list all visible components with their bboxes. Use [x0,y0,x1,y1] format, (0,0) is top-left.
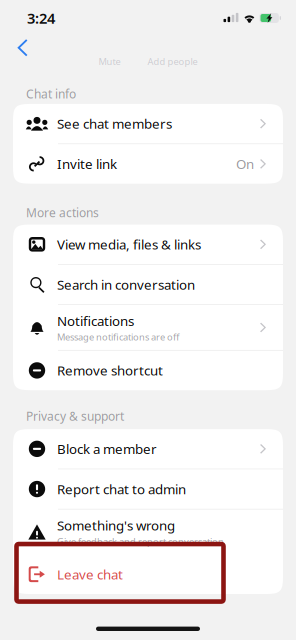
button[interactable]: Invite link [13,144,283,184]
staticText: Remove shortcut [57,362,163,379]
staticText: More actions [26,205,99,220]
staticText: Invite link [57,155,117,173]
staticText: Message notifications are off [57,331,179,343]
button[interactable]: View media, files & links [13,225,283,264]
staticText: See chat members [57,115,172,132]
button[interactable]: Notifications [13,305,283,350]
staticText: Privacy & support [26,408,124,424]
button[interactable]: Block a member [13,429,283,469]
button[interactable]: Report chat to admin [13,469,283,509]
staticText: Add people [147,55,197,68]
staticText: Something's wrong [57,516,175,534]
button[interactable]: Leave chat [13,554,283,594]
button[interactable]: See chat members [13,104,283,143]
button[interactable]: Remove shortcut [13,351,283,390]
staticText: Notifications [57,312,134,330]
button[interactable]: Something's wrong [13,509,283,554]
staticText: Report chat to admin [57,480,186,498]
staticText: Mute [98,55,120,68]
staticText: Chat info [26,86,76,102]
staticText: Search in conversation [57,276,195,293]
staticText: Block a member [57,440,157,458]
staticText: Leave chat [57,565,123,583]
staticText: View media, files & links [57,235,201,253]
staticText: Give feedback and report conversation [57,535,224,548]
button[interactable]: Back [0,37,42,60]
staticText: On [236,155,254,173]
button[interactable]: Search in conversation [13,265,283,304]
staticText: 3:24 [27,8,55,28]
